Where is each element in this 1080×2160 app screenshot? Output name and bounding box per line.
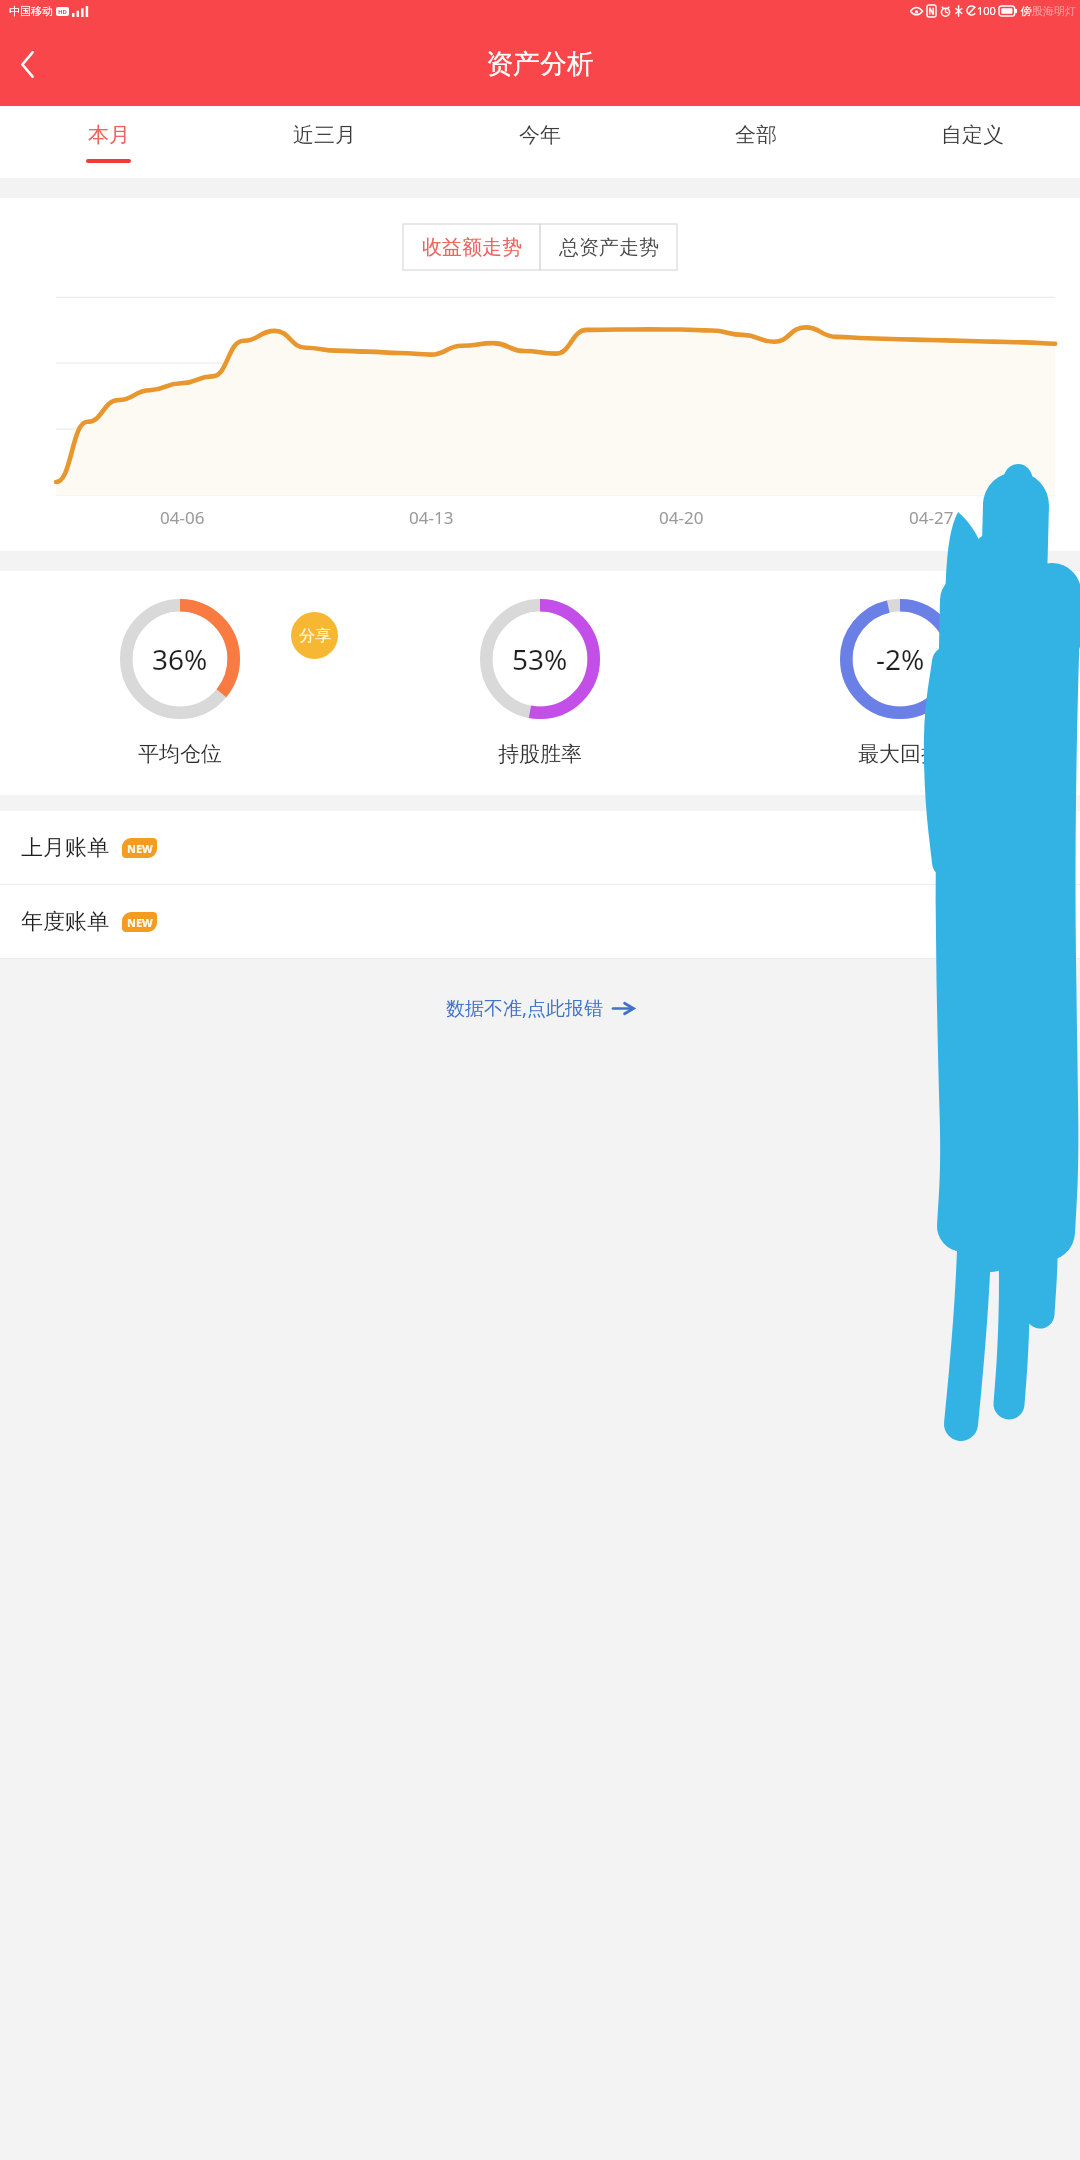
staticText: 近三月 (293, 122, 356, 148)
staticText: 上月账单 (21, 834, 109, 862)
staticText: 傍 (1021, 4, 1032, 18)
button[interactable]: 近三月 (216, 106, 432, 178)
staticText: 最大回撤 (858, 741, 942, 767)
staticText: 04-06 (160, 506, 205, 529)
button[interactable]: 上月账单 (0, 811, 1080, 884)
button[interactable]: 本月 (0, 106, 216, 178)
staticText: 平均仓位 (138, 741, 222, 767)
staticText: 中国移动 (9, 4, 53, 18)
button[interactable]: 收益额走势 (403, 224, 540, 270)
staticText: 资产分析 (486, 47, 594, 81)
staticText: NEW (127, 841, 153, 856)
button[interactable]: 今年 (432, 106, 648, 178)
staticText: HD (58, 8, 67, 16)
staticText: 数据不准,点此报错 (446, 995, 604, 1021)
staticText: 分享 (299, 626, 331, 646)
staticText: 53% (512, 640, 568, 678)
staticText: NEW (127, 915, 153, 930)
staticText: 股海明灯 (1032, 4, 1076, 18)
staticText: 持股胜率 (498, 741, 582, 767)
button[interactable]: 自定义 (864, 106, 1080, 178)
staticText: 今年 (519, 122, 561, 148)
button[interactable]: 年度账单 (0, 885, 1080, 958)
staticText: 本月 (88, 122, 130, 148)
staticText: 04-13 (409, 506, 454, 529)
staticText: 36% (152, 640, 208, 678)
staticText: 总资产走势 (559, 235, 659, 260)
staticText: 全部 (735, 122, 777, 148)
staticText: 04-20 (659, 506, 704, 529)
button[interactable]: 数据不准,点此报错 (436, 989, 644, 1027)
button[interactable]: 分享 (291, 612, 338, 659)
button[interactable]: 全部 (648, 106, 864, 178)
staticText: 收益额走势 (422, 235, 522, 260)
staticText: 04-27 (909, 506, 954, 529)
staticText: 100 (977, 3, 996, 18)
staticText: 年度账单 (21, 908, 109, 936)
staticText: 自定义 (941, 122, 1004, 148)
button[interactable]: 总资产走势 (540, 224, 677, 270)
staticText: -2% (876, 640, 925, 678)
button[interactable]: 返回 (0, 37, 54, 91)
